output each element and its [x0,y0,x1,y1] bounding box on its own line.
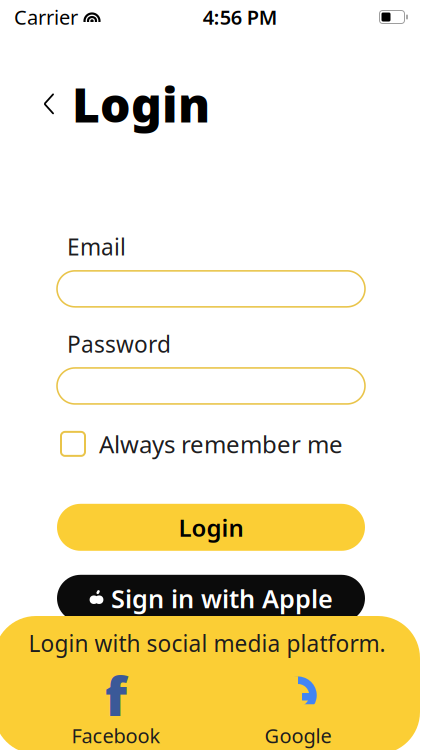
staticText: Sign in with Apple [111,581,333,615]
staticText: Login [178,511,243,543]
staticText: Password [67,329,171,359]
button[interactable]: f [56,676,176,749]
button[interactable]: Always remember me [57,428,365,460]
staticText: Email [67,232,126,262]
staticText: f [105,660,127,731]
staticText: Login with social media platform. [28,628,385,658]
button[interactable]: Sign in with Apple [57,575,365,622]
staticText: Carrier [14,4,78,30]
staticText: 4:56 PM [203,4,278,30]
staticText: Google [264,722,331,749]
button[interactable]: Login [57,504,365,551]
button[interactable]: Back [32,82,66,126]
staticText: Facebook [71,722,160,749]
staticText: Login [72,72,210,136]
staticText: Always remember me [99,428,343,460]
button[interactable]: Google [238,676,358,749]
